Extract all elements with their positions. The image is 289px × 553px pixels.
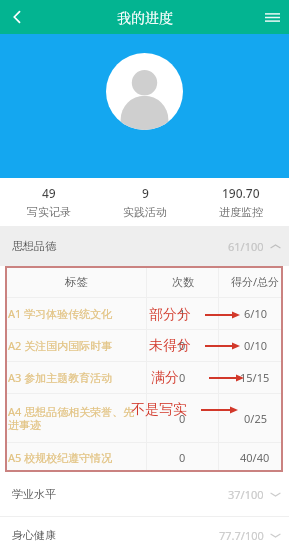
staticText: 得分/总分 (231, 274, 280, 289)
staticText: 思想品德 (12, 239, 56, 253)
staticText: 15/15 (240, 370, 270, 385)
staticText: A4 思想品德相关荣誉、先进事迹 (8, 404, 144, 433)
staticText: 部分分 (149, 306, 191, 324)
button[interactable]: 学业水平 (0, 472, 289, 516)
button[interactable]: 190.70 (193, 178, 289, 226)
staticText: A1 学习体验传统文化 (8, 306, 113, 321)
staticText: A5 校规校纪遵守情况 (8, 450, 113, 465)
staticText: 我的进度 (117, 7, 173, 27)
staticText: 进度监控 (219, 205, 263, 219)
staticText: A3 参加主题教育活动 (8, 370, 113, 385)
staticText: 不是写实 (131, 401, 187, 419)
staticText: 实践活动 (123, 205, 167, 219)
staticText: 49 (42, 185, 56, 201)
staticText: 写实记录 (27, 205, 71, 219)
staticText: 61/100 (228, 239, 264, 254)
staticText: 0 (179, 370, 186, 385)
button[interactable]: 49 (0, 178, 97, 226)
staticText: 77.7/100 (219, 528, 264, 543)
staticText: 37/100 (228, 487, 264, 502)
staticText: 40/40 (240, 450, 270, 465)
staticText: 6/10 (244, 306, 267, 321)
button[interactable]: Menu (255, 0, 289, 34)
staticText: 0 (179, 450, 186, 465)
staticText: 1 (179, 306, 186, 321)
staticText: 身心健康 (12, 528, 56, 542)
staticText: 未得分 (149, 337, 191, 355)
staticText: 190.70 (222, 185, 260, 201)
button[interactable]: 身心健康 (0, 517, 289, 553)
staticText: 0/10 (244, 338, 267, 353)
staticText: 0/25 (244, 411, 267, 426)
staticText: 0 (179, 411, 186, 426)
staticText: 满分 (151, 369, 179, 387)
button[interactable]: 思想品德 (0, 226, 289, 266)
staticText: A2 关注国内国际时事 (8, 338, 113, 353)
staticText: 9 (142, 185, 149, 201)
button[interactable]: Back (0, 0, 34, 34)
button[interactable]: 9 (97, 178, 193, 226)
staticText: 0 (179, 338, 186, 353)
staticText: 标签 (65, 275, 88, 289)
staticText: 学业水平 (12, 487, 56, 501)
staticText: 次数 (172, 275, 194, 289)
